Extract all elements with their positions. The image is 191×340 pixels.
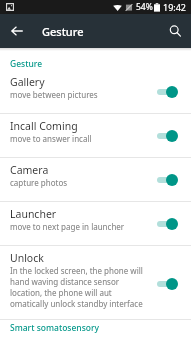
staticText: location, the phone will aut: [10, 287, 112, 298]
button[interactable]: [157, 86, 179, 98]
button[interactable]: [157, 130, 179, 142]
staticText: move between pictures: [10, 89, 98, 100]
staticText: 19:42: [163, 1, 187, 13]
staticText: Gesture: [10, 58, 191, 70]
staticText: omatically unlock standby interface: [10, 298, 143, 309]
staticText: Gallery: [10, 75, 45, 89]
staticText: move to answer incall: [10, 133, 92, 144]
button[interactable]: Incall Coming: [0, 114, 191, 158]
staticText: Incall Coming: [10, 119, 78, 133]
staticText: Unlock: [10, 251, 44, 265]
staticText: Camera: [10, 163, 49, 177]
button[interactable]: Gallery: [0, 74, 191, 114]
staticText: capture photos: [10, 177, 68, 188]
button[interactable]: Camera: [0, 158, 191, 202]
button[interactable]: Search: [157, 14, 191, 48]
staticText: move to next page in launcher: [10, 221, 125, 232]
staticText: 54%: [136, 1, 153, 13]
button[interactable]: [157, 174, 179, 186]
button[interactable]: Unlock: [0, 246, 191, 320]
staticText: In the locked screen, the phone will: [10, 265, 143, 276]
staticText: hand waving distance sensor: [10, 276, 120, 287]
button[interactable]: Launcher: [0, 202, 191, 246]
staticText: Smart somatosensory: [10, 322, 191, 334]
button[interactable]: [157, 218, 179, 230]
button[interactable]: Back: [0, 14, 34, 48]
staticText: Gesture: [42, 24, 84, 39]
staticText: Launcher: [10, 207, 57, 221]
button[interactable]: [157, 278, 179, 290]
